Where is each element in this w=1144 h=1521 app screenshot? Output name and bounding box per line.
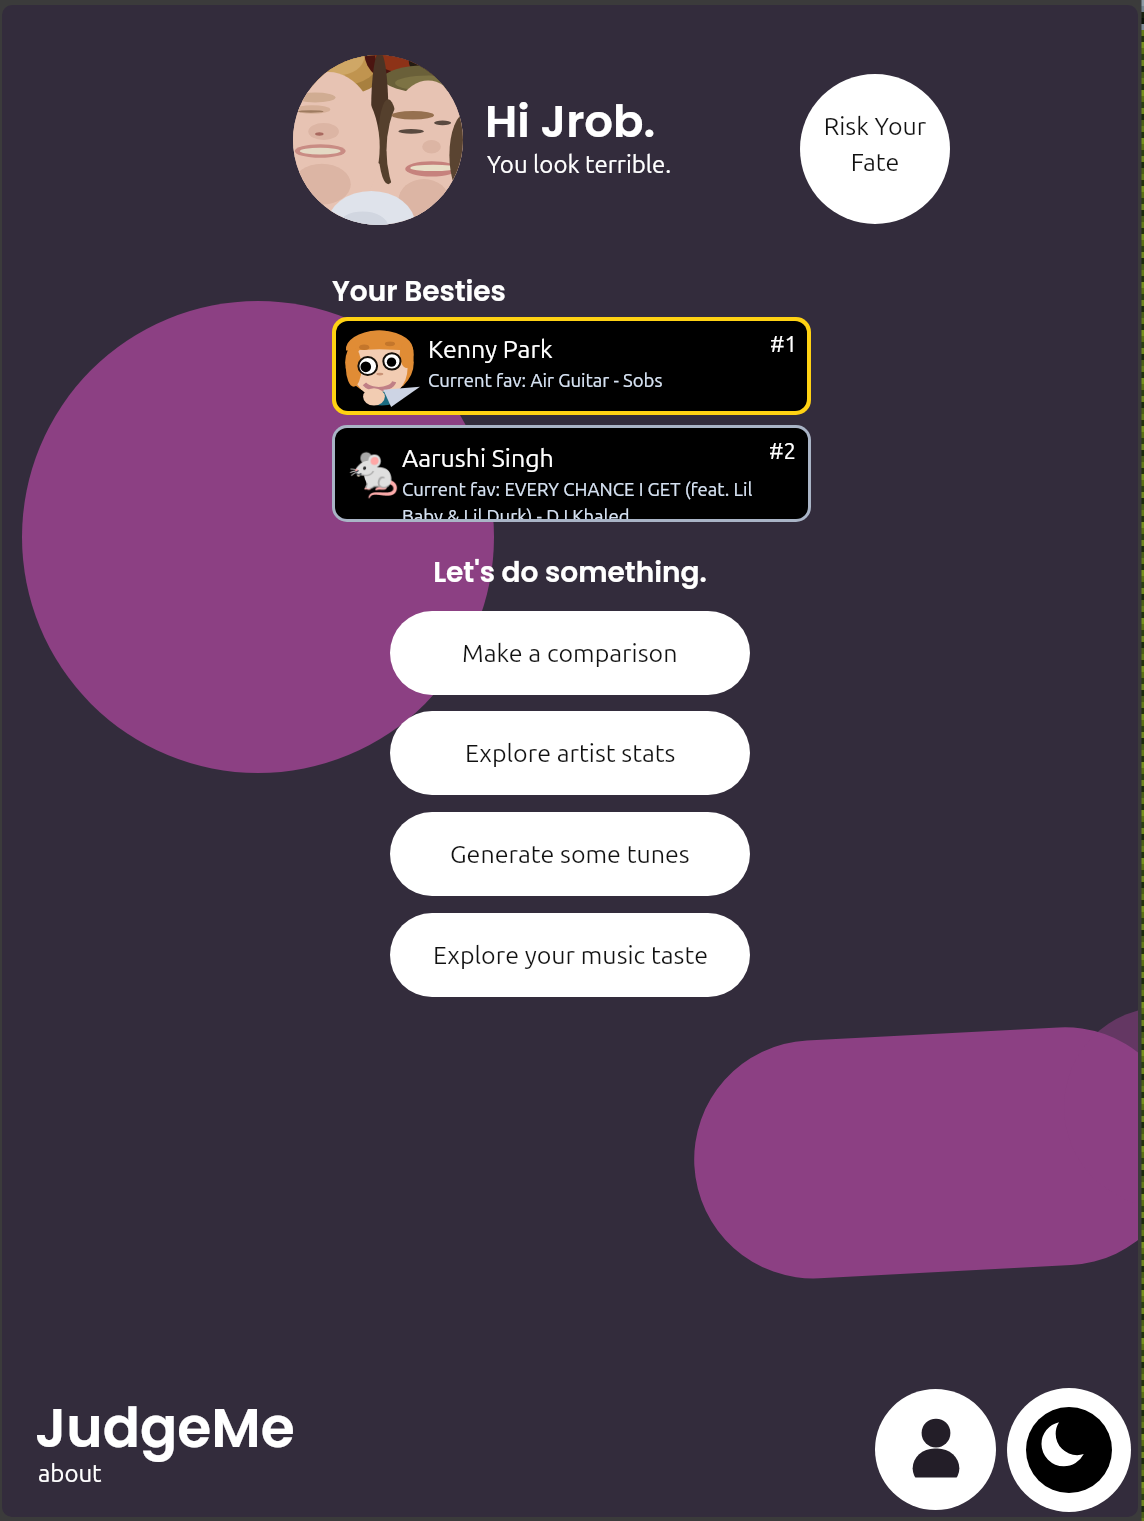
button[interactable]: 🐁 xyxy=(335,428,808,519)
staticText: Current fav: Air Guitar - Sobs xyxy=(428,370,663,391)
button[interactable]: Explore your music taste xyxy=(390,913,750,997)
staticText: Risk Your Fate xyxy=(820,112,930,176)
staticText: You look terrible. xyxy=(487,151,672,178)
staticText: JudgeMe xyxy=(35,1389,295,1466)
staticText: 🐁 xyxy=(343,442,406,501)
staticText: Make a comparison xyxy=(462,639,678,667)
staticText: Explore artist stats xyxy=(465,739,676,767)
staticText: Explore your music taste xyxy=(433,941,708,969)
staticText: Current fav: EVERY CHANCE I GET (feat. L… xyxy=(402,479,760,519)
button[interactable]: Generate some tunes xyxy=(390,812,750,896)
staticText: Hi Jrob. xyxy=(485,90,656,153)
button[interactable]: about xyxy=(38,1460,102,1487)
button[interactable]: Kenny Park xyxy=(336,321,807,411)
staticText: Generate some tunes xyxy=(450,840,690,868)
staticText: Let's do something. xyxy=(2,553,1138,592)
staticText: Your Besties xyxy=(332,272,506,311)
staticText: Aarushi Singh xyxy=(402,444,554,472)
button[interactable]: Make a comparison xyxy=(390,611,750,695)
staticText: Kenny Park xyxy=(428,335,553,363)
staticText: #1 xyxy=(770,331,797,356)
button[interactable]: Profile xyxy=(875,1389,996,1510)
button[interactable]: Explore artist stats xyxy=(390,711,750,795)
staticText: #2 xyxy=(769,438,796,463)
button[interactable]: Toggle dark mode xyxy=(1007,1388,1131,1512)
button[interactable]: Risk Your Fate xyxy=(800,74,950,224)
